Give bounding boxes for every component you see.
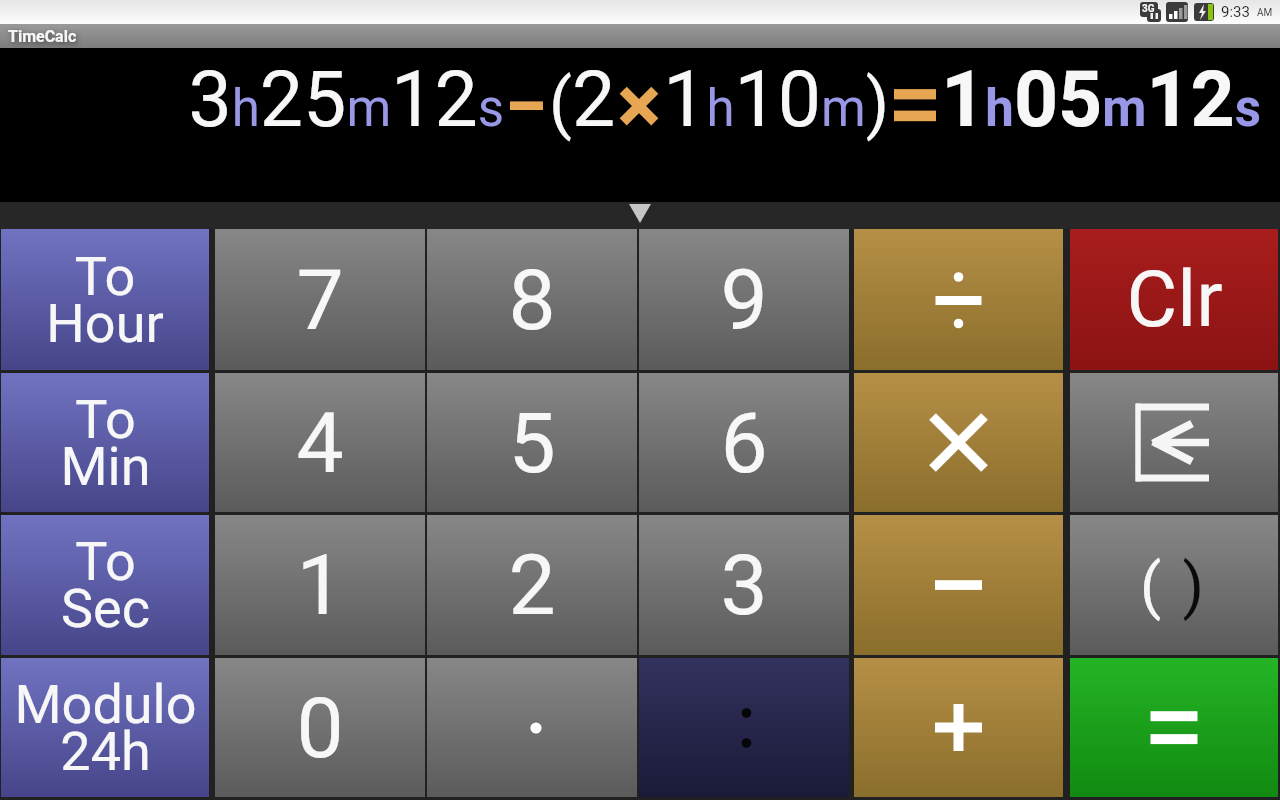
button[interactable] bbox=[854, 373, 1063, 512]
button[interactable] bbox=[1070, 658, 1278, 797]
staticText: Clr bbox=[1126, 254, 1223, 345]
staticText: 7 bbox=[296, 251, 344, 349]
button[interactable] bbox=[854, 515, 1063, 655]
button[interactable] bbox=[854, 229, 1063, 370]
staticText: 3h25m12s−(2×1h10m)=1h05m12s bbox=[0, 54, 1261, 145]
button[interactable]: Modulo 24h bbox=[1, 658, 209, 797]
button[interactable]: 0 bbox=[215, 658, 425, 797]
button[interactable]: 6 bbox=[639, 373, 849, 512]
staticText: 1 bbox=[296, 536, 344, 634]
button[interactable]: 3 bbox=[639, 515, 849, 655]
staticText: 8 bbox=[508, 251, 556, 349]
staticText: 3G bbox=[1142, 3, 1155, 15]
button[interactable] bbox=[854, 658, 1063, 797]
staticText: To Sec bbox=[61, 530, 150, 640]
staticText: 9 bbox=[720, 251, 768, 349]
button[interactable]: To Hour bbox=[1, 229, 209, 370]
button[interactable]: 8 bbox=[427, 229, 637, 370]
staticText: To Min bbox=[60, 388, 151, 498]
button[interactable] bbox=[1070, 373, 1278, 512]
staticText: 6 bbox=[720, 394, 768, 492]
button[interactable] bbox=[639, 658, 849, 797]
staticText: 2 bbox=[508, 536, 556, 634]
staticText: 0 bbox=[296, 679, 344, 777]
staticText: TimeCalc bbox=[8, 27, 77, 46]
staticText: ( ) bbox=[1140, 549, 1208, 622]
staticText: 4 bbox=[296, 394, 344, 492]
button[interactable]: To Min bbox=[1, 373, 209, 512]
button[interactable]: 2 bbox=[427, 515, 637, 655]
button[interactable]: 1 bbox=[215, 515, 425, 655]
button[interactable] bbox=[427, 658, 637, 797]
button[interactable]: ( ) bbox=[1070, 515, 1278, 655]
button[interactable]: To Sec bbox=[1, 515, 209, 655]
button[interactable]: 4 bbox=[215, 373, 425, 512]
button[interactable]: 5 bbox=[427, 373, 637, 512]
button[interactable]: Clr bbox=[1070, 229, 1278, 370]
staticText: AM bbox=[1257, 7, 1273, 19]
button[interactable]: 7 bbox=[215, 229, 425, 370]
staticText: 9:33 bbox=[1221, 3, 1250, 21]
button[interactable]: 9 bbox=[639, 229, 849, 370]
staticText: 3 bbox=[720, 536, 768, 634]
staticText: Modulo 24h bbox=[14, 673, 197, 783]
staticText: 5 bbox=[508, 394, 556, 492]
staticText: To Hour bbox=[46, 245, 164, 355]
